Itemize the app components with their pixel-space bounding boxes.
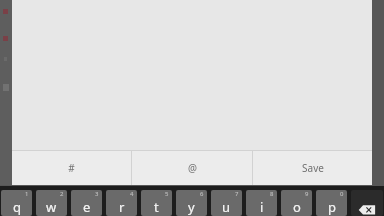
staticText: 9 (305, 190, 309, 198)
staticText: 2 (60, 190, 64, 198)
staticText: o (293, 198, 301, 216)
staticText: p (328, 198, 336, 216)
button[interactable]: # (12, 151, 131, 185)
staticText: 3 (95, 190, 99, 198)
button[interactable]: @ (132, 151, 252, 185)
staticText: i (260, 198, 264, 216)
button[interactable]: 9 (281, 190, 312, 216)
staticText: Save (302, 161, 324, 175)
button[interactable]: 0 (316, 190, 347, 216)
button[interactable]: 8 (246, 190, 277, 216)
staticText: q (13, 198, 21, 216)
staticText: t (154, 198, 159, 216)
button[interactable]: 5 (141, 190, 172, 216)
staticText: 4 (130, 190, 134, 198)
staticText: 8 (270, 190, 274, 198)
staticText: u (222, 198, 231, 216)
staticText: 6 (200, 190, 204, 198)
staticText: # (68, 161, 75, 175)
staticText: 1 (25, 190, 29, 198)
staticText: 7 (235, 190, 239, 198)
staticText: e (83, 198, 91, 216)
button[interactable]: Save (253, 151, 372, 185)
button[interactable]: 7 (211, 190, 242, 216)
staticText: r (119, 198, 125, 216)
staticText: w (46, 198, 57, 216)
button[interactable]: 3 (71, 190, 102, 216)
button[interactable]: 4 (106, 190, 137, 216)
button[interactable]: 2 (36, 190, 67, 216)
button[interactable]: Backspace (351, 190, 383, 216)
staticText: 5 (165, 190, 169, 198)
staticText: y (188, 198, 195, 216)
staticText: 0 (340, 190, 344, 198)
button[interactable]: 1 (1, 190, 32, 216)
staticText: @ (188, 161, 197, 175)
button[interactable]: 6 (176, 190, 207, 216)
